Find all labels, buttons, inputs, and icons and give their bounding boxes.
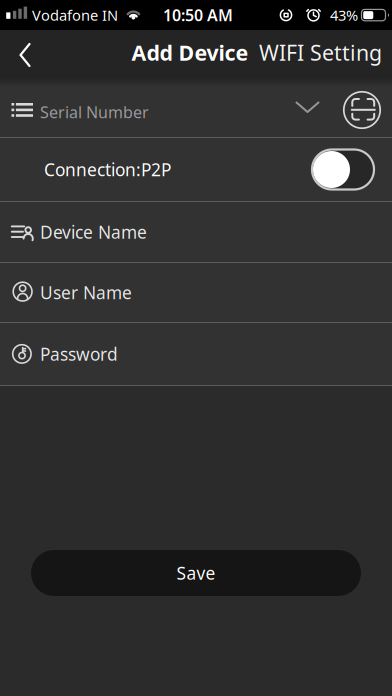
button[interactable]: Back [0,33,48,81]
button[interactable]: Serial Number [0,87,288,137]
staticText: Vodafone IN [32,5,118,25]
staticText: Add Device [131,38,248,67]
staticText: Save [176,561,215,584]
button[interactable]: Choose serial number [288,87,340,137]
staticText: WIFI Setting [259,38,382,67]
staticText: User Name [40,281,132,304]
button[interactable]: Device Name [0,202,392,262]
button[interactable]: Password [0,323,392,385]
staticText: 10:50 AM [163,4,233,26]
staticText: Serial Number [40,101,149,123]
staticText: Device Name [40,220,147,243]
staticText: 43% [330,5,358,25]
staticText: Password [40,342,118,365]
button[interactable]: Scan QR code [340,87,392,137]
staticText: Connection:P2P [44,158,171,181]
button[interactable]: User Name [0,263,392,322]
button[interactable]: WIFI Setting [259,38,382,67]
button[interactable]: Save [31,550,361,596]
button[interactable]: Connection:P2P [312,149,374,189]
